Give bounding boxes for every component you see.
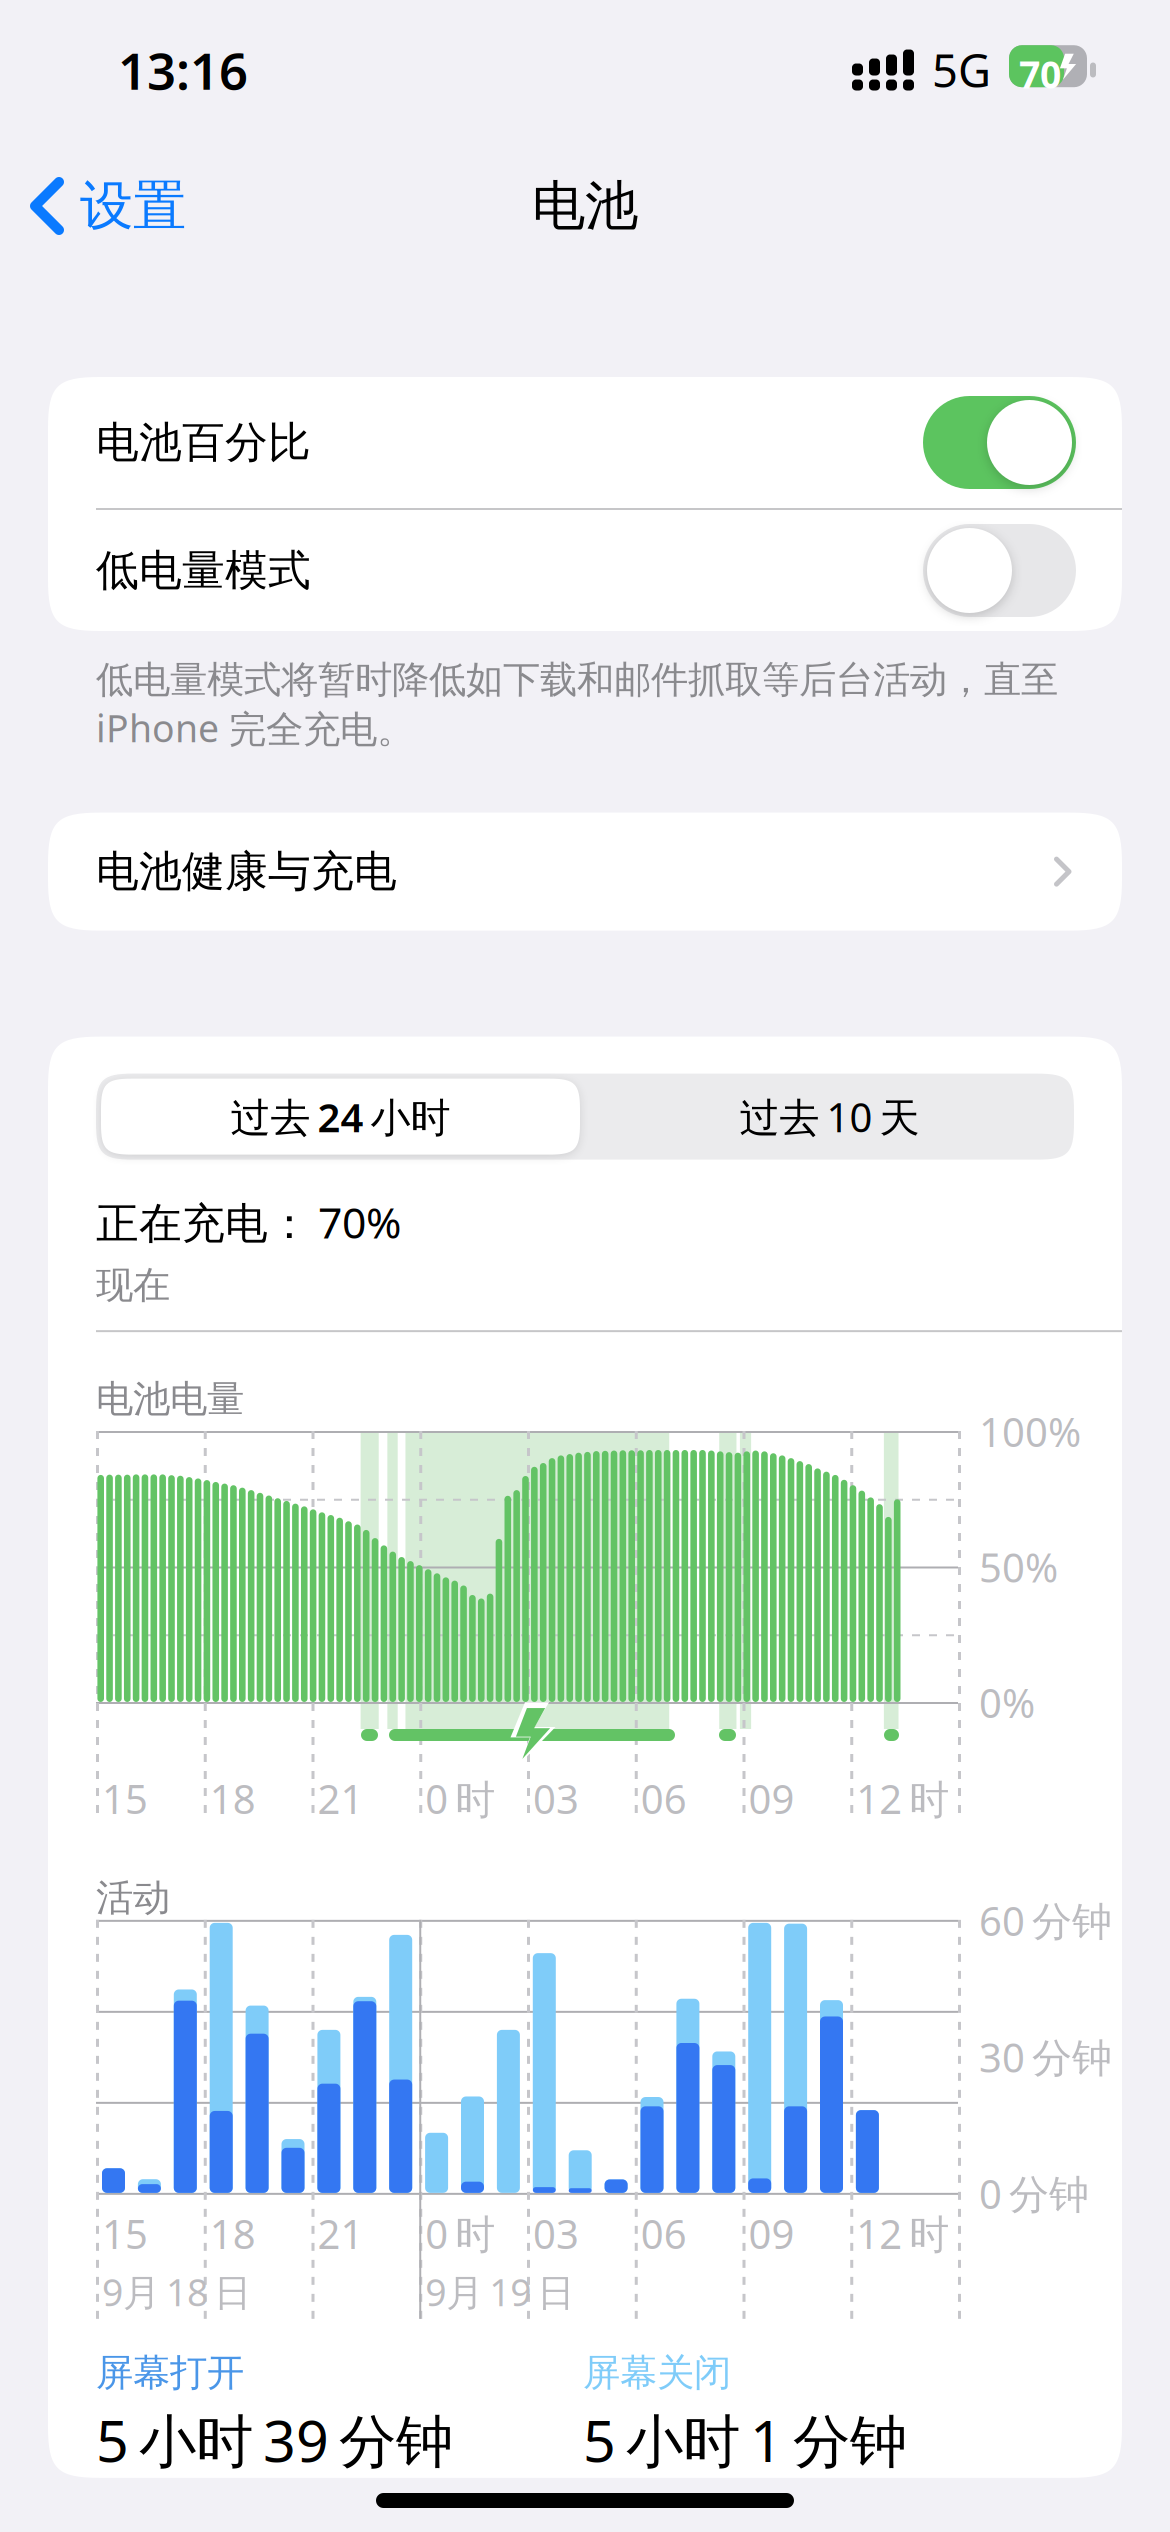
staticText: 06: [641, 2207, 687, 2260]
staticText: 60 分钟: [979, 1894, 1112, 1947]
staticText: 03: [533, 1772, 579, 1825]
staticText: 9月 19 日: [425, 2267, 574, 2316]
staticText: 18: [210, 1772, 256, 1825]
staticText: 70: [1019, 49, 1061, 99]
staticText: 过去 10 天: [739, 1090, 919, 1143]
staticText: 15: [102, 1772, 148, 1825]
button[interactable]: 电池百分比: [48, 377, 1122, 508]
staticText: 过去 24 小时: [230, 1090, 450, 1143]
staticText: 09: [748, 2207, 794, 2260]
staticText: 06: [641, 1772, 687, 1825]
staticText: 9月 18 日: [102, 2267, 251, 2316]
staticText: 0 时: [425, 1772, 495, 1825]
staticText: 5G: [932, 40, 991, 100]
staticText: 电池百分比: [96, 416, 311, 469]
staticText: 03: [533, 2207, 579, 2260]
staticText: 0 时: [425, 2207, 495, 2260]
button[interactable]: 过去 10 天: [585, 1074, 1074, 1160]
staticText: 21: [317, 1772, 363, 1825]
staticText: 12 时: [856, 2207, 949, 2260]
staticText: 电池电量: [96, 1376, 244, 1422]
button[interactable]: 设置: [0, 140, 210, 272]
staticText: 15: [102, 2207, 148, 2260]
staticText: 现在: [96, 1262, 170, 1308]
staticText: 屏幕关闭: [583, 2350, 731, 2396]
staticText: 0%: [979, 1676, 1035, 1729]
staticText: 电池健康与充电: [96, 845, 397, 898]
button[interactable]: 过去 24 小时: [96, 1074, 585, 1160]
button[interactable]: 低电量模式: [48, 510, 1122, 631]
staticText: 13:16: [118, 36, 248, 104]
staticText: 30 分钟: [979, 2030, 1112, 2083]
staticText: 低电量模式将暂时降低如下载和邮件抓取等后台活动，直至 iPhone 完全充电。: [96, 657, 1058, 753]
staticText: 低电量模式: [96, 544, 311, 597]
staticText: 电池: [532, 173, 638, 239]
staticText: 21: [317, 2207, 363, 2260]
staticText: 100%: [979, 1405, 1081, 1458]
staticText: 活动: [96, 1875, 170, 1921]
staticText: 屏幕打开: [96, 2350, 244, 2396]
staticText: 5 小时 1 分钟: [583, 2402, 907, 2478]
staticText: 09: [748, 1772, 794, 1825]
staticText: 18: [210, 2207, 256, 2260]
button[interactable]: 电池健康与充电: [48, 813, 1122, 931]
staticText: 5 小时 39 分钟: [96, 2402, 453, 2478]
staticText: 12 时: [856, 1772, 949, 1825]
staticText: 设置: [80, 173, 186, 239]
staticText: 正在充电： 70%: [96, 1194, 401, 1250]
staticText: 0 分钟: [979, 2167, 1089, 2220]
staticText: 50%: [979, 1540, 1058, 1594]
